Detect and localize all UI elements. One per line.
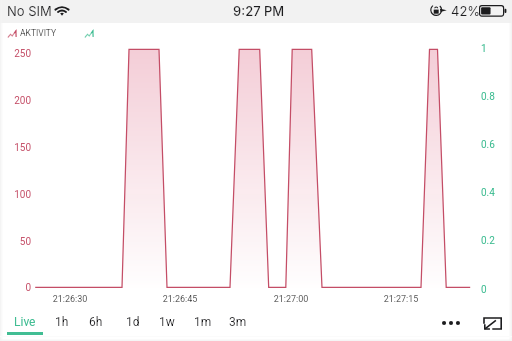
staticText: 200 — [0, 95, 31, 107]
button[interactable]: 6h — [78, 307, 113, 337]
staticText: 1 — [481, 43, 512, 55]
staticText: 250 — [0, 48, 31, 60]
button[interactable]: 1w — [149, 307, 184, 337]
staticText: 0 — [0, 282, 31, 294]
staticText: 0.2 — [481, 235, 512, 247]
staticText: 1m — [194, 315, 212, 329]
staticText: Live — [14, 315, 36, 329]
staticText: 0.8 — [481, 91, 512, 103]
staticText: 6h — [89, 315, 103, 329]
staticText: 0 — [481, 284, 512, 296]
button[interactable]: 1d — [115, 307, 150, 337]
staticText: 1w — [159, 315, 175, 329]
staticText: 21:26:45 — [145, 294, 215, 305]
staticText: AKTIVITY — [20, 28, 57, 38]
staticText: 150 — [0, 142, 31, 154]
button[interactable]: 1m — [185, 307, 220, 337]
staticText: 21:27:15 — [366, 294, 436, 305]
staticText: 9:27 PM — [233, 3, 285, 19]
button[interactable]: Exit fullscreen — [478, 310, 508, 336]
staticText: 1d — [126, 315, 140, 329]
button[interactable]: More options — [436, 311, 466, 335]
staticText: 1h — [55, 315, 69, 329]
button[interactable]: Live — [7, 307, 42, 337]
staticText: 42% — [451, 3, 481, 19]
staticText: 21:27:00 — [256, 294, 326, 305]
staticText: No SIM — [7, 3, 52, 19]
staticText: 21:26:30 — [35, 294, 105, 305]
staticText: 50 — [0, 236, 31, 248]
button[interactable]: 1h — [44, 307, 79, 337]
staticText: 3m — [229, 315, 247, 329]
button[interactable]: 3m — [220, 307, 255, 337]
staticText: 100 — [0, 189, 31, 201]
staticText: 0.6 — [481, 139, 512, 151]
staticText: 0.4 — [481, 187, 512, 199]
